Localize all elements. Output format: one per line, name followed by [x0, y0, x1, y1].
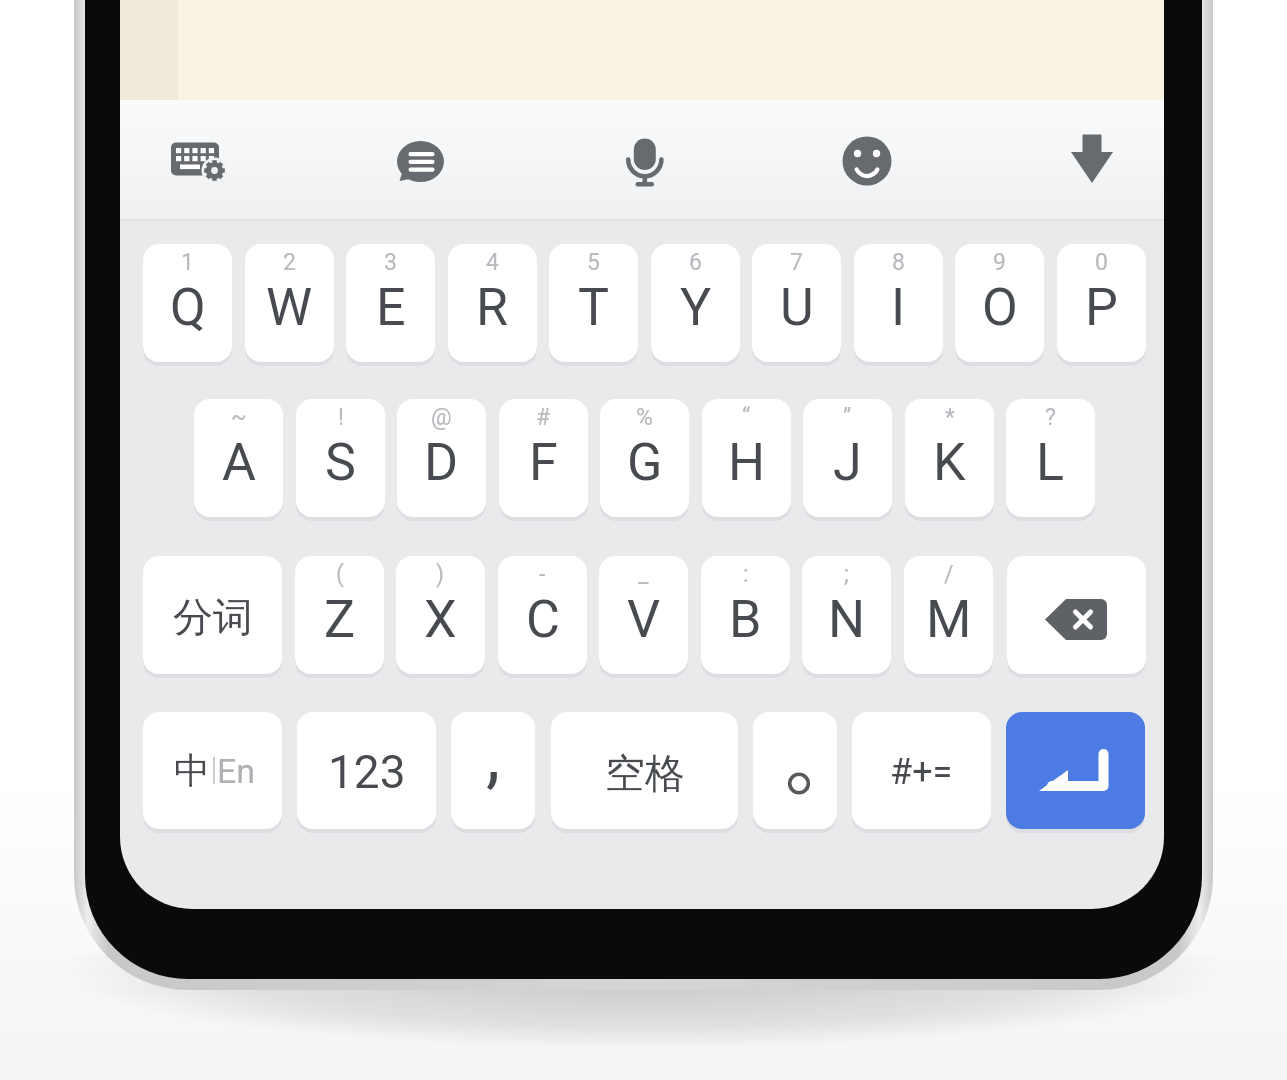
button[interactable]	[1006, 712, 1145, 829]
staticText: *	[945, 404, 955, 431]
staticText: 3	[384, 249, 397, 276]
button[interactable]	[375, 115, 465, 205]
staticText: G	[627, 432, 663, 493]
staticText: C	[526, 589, 560, 650]
staticText: 8	[892, 249, 905, 276]
button[interactable]: ?	[1006, 399, 1095, 517]
button[interactable]	[1007, 556, 1146, 674]
button[interactable]: %	[600, 399, 689, 517]
staticText: En	[217, 751, 256, 791]
staticText: )	[436, 561, 445, 588]
staticText: /	[944, 561, 954, 588]
staticText: V	[627, 589, 661, 650]
staticText: H	[728, 432, 766, 493]
button[interactable]: ”	[803, 399, 892, 517]
staticText: #	[536, 404, 551, 431]
staticText: L	[1036, 432, 1065, 493]
button[interactable]: 0	[1057, 244, 1146, 362]
staticText: 6	[689, 249, 702, 276]
staticText: !	[338, 404, 344, 431]
button[interactable]	[600, 115, 690, 205]
button[interactable]: 8	[854, 244, 943, 362]
staticText: Z	[324, 589, 356, 650]
button[interactable]: 7	[752, 244, 841, 362]
button[interactable]: (	[295, 556, 384, 674]
staticText: -	[539, 561, 546, 588]
staticText: 5	[587, 249, 600, 276]
staticText: 中	[174, 748, 210, 793]
staticText: Y	[680, 277, 712, 338]
staticText: 分词	[173, 592, 253, 642]
staticText: I	[891, 277, 906, 338]
staticText: O	[982, 277, 1018, 338]
staticText: Q	[170, 277, 206, 338]
staticText: ;	[844, 561, 849, 588]
button[interactable]: 123	[297, 712, 436, 829]
staticText: F	[529, 432, 558, 493]
staticText: (	[336, 561, 344, 588]
staticText: “	[742, 404, 751, 431]
staticText: @	[431, 404, 452, 431]
button[interactable]: ~	[194, 399, 283, 517]
staticText: 2	[283, 249, 296, 276]
staticText: P	[1085, 277, 1118, 338]
button[interactable]: 空格	[551, 712, 738, 829]
staticText: D	[424, 432, 459, 493]
staticText: J	[833, 432, 862, 493]
staticText: W	[266, 277, 313, 338]
button[interactable]: -	[498, 556, 587, 674]
button[interactable]: 中	[143, 712, 282, 829]
staticText: _	[638, 561, 649, 588]
staticText: ~	[231, 404, 247, 431]
staticText: A	[222, 432, 256, 493]
staticText: ”	[843, 404, 852, 431]
staticText: 9	[993, 249, 1006, 276]
staticText: 0	[1095, 249, 1108, 276]
button[interactable]: #+=	[852, 712, 991, 829]
button[interactable]	[1047, 115, 1137, 205]
button[interactable]: ;	[802, 556, 891, 674]
staticText: S	[325, 432, 356, 493]
button[interactable]: ,	[451, 712, 535, 829]
staticText: ,	[486, 713, 501, 797]
button[interactable]: 5	[549, 244, 638, 362]
button[interactable]	[753, 712, 837, 829]
button[interactable]: :	[701, 556, 790, 674]
button[interactable]: *	[905, 399, 994, 517]
button[interactable]: 9	[955, 244, 1044, 362]
staticText: M	[926, 589, 972, 650]
button[interactable]	[152, 115, 242, 205]
staticText: N	[828, 589, 866, 650]
button[interactable]: @	[397, 399, 486, 517]
button[interactable]: )	[396, 556, 485, 674]
staticText: K	[933, 432, 966, 493]
button[interactable]: _	[599, 556, 688, 674]
staticText: B	[729, 589, 762, 650]
button[interactable]: #	[499, 399, 588, 517]
staticText: ?	[1045, 404, 1056, 431]
button[interactable]: /	[904, 556, 993, 674]
staticText: 1	[181, 249, 194, 276]
staticText: 空格	[605, 748, 685, 798]
button[interactable]	[823, 115, 913, 205]
staticText: :	[743, 561, 749, 588]
button[interactable]: 6	[651, 244, 740, 362]
staticText: 123	[328, 745, 406, 799]
staticText: E	[376, 277, 406, 338]
button[interactable]: 4	[448, 244, 537, 362]
staticText: R	[476, 277, 509, 338]
staticText: #+=	[890, 751, 953, 793]
button[interactable]: 3	[346, 244, 435, 362]
button[interactable]: !	[296, 399, 385, 517]
button[interactable]: 2	[245, 244, 334, 362]
button[interactable]: “	[702, 399, 791, 517]
staticText: U	[780, 277, 814, 338]
button[interactable]: 1	[143, 244, 232, 362]
staticText: X	[424, 589, 457, 650]
staticText: 4	[486, 249, 499, 276]
staticText: %	[636, 404, 653, 431]
staticText: 7	[790, 249, 803, 276]
button[interactable]: 分词	[143, 556, 282, 674]
staticText: T	[578, 277, 610, 338]
